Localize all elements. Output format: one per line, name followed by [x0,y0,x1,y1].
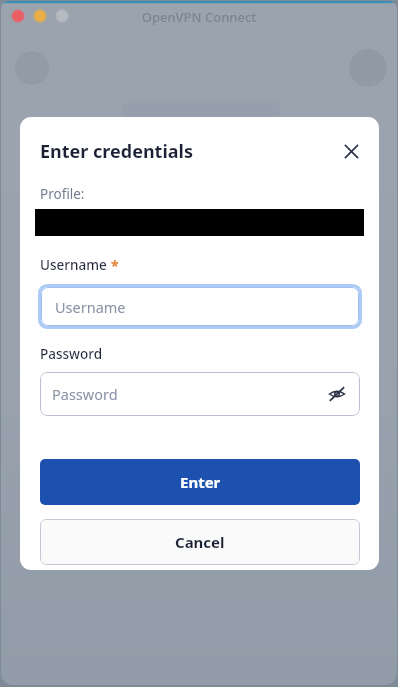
staticText: * [111,256,119,275]
button[interactable]: Cancel [40,519,360,565]
staticText: OpenVPN Connect [1,8,397,26]
button[interactable]: Close [338,138,364,164]
staticText: Cancel [175,532,225,552]
staticText: Enter [180,472,221,492]
staticText: Username [40,256,107,274]
button[interactable]: Enter [40,459,360,505]
staticText: Password [52,384,118,404]
button[interactable]: Password [40,372,360,416]
staticText: Enter credentials [40,139,193,164]
button[interactable]: Show password [324,381,350,407]
staticText: Password [40,345,103,363]
button[interactable]: Username [38,284,362,329]
staticText: Username [55,297,126,317]
staticText: Profile: [40,185,85,203]
